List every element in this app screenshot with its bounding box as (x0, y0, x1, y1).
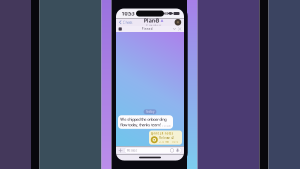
button[interactable]: Attach (116, 147, 124, 154)
staticText: Plan·B (144, 17, 160, 24)
staticText: Release v2 (159, 136, 174, 140)
button[interactable]: Group info (175, 19, 184, 26)
staticText: Sprint 24 notes (151, 132, 173, 135)
button[interactable]: Pinned (116, 26, 184, 32)
button[interactable]: Chats (116, 18, 132, 26)
staticText: Pinned (142, 27, 153, 31)
staticText: 10:48 (162, 124, 171, 128)
staticText: flow today, thanks team! (120, 122, 161, 127)
staticText: Chats (122, 20, 132, 25)
staticText: Message (127, 149, 138, 152)
button[interactable]: Message (124, 147, 184, 153)
staticText: 2.4 MB (159, 140, 169, 143)
staticText: 10:51 (171, 140, 180, 144)
staticText: 10:53 (121, 10, 134, 17)
staticText: We shipped the onboarding (120, 117, 166, 122)
staticText: 8 members (146, 24, 161, 27)
staticText: Today (146, 110, 154, 113)
